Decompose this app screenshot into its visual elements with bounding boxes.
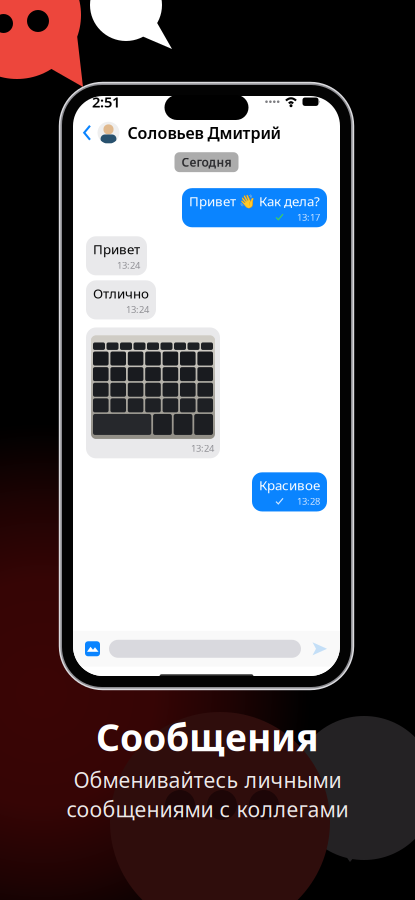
button[interactable]: Соловьев Дмитрий (97, 118, 280, 148)
staticText: 13:28 (297, 495, 320, 507)
button[interactable]: Отлично (86, 280, 156, 319)
button[interactable]: Привет 👋 Как дела? (182, 188, 327, 227)
button[interactable]: Attach photo (85, 641, 109, 656)
button[interactable]: Send (301, 642, 328, 656)
staticText: Красивое (259, 476, 320, 494)
staticText: 2:51 (92, 92, 120, 111)
staticText: сообщениями с коллегами (66, 795, 348, 823)
staticText: Сообщения (96, 712, 319, 762)
staticText: Привет (93, 240, 140, 258)
staticText: Соловьев Дмитрий (127, 122, 280, 143)
staticText: 13:24 (126, 303, 149, 315)
button[interactable]: Красивое (252, 472, 327, 511)
button[interactable]: Back (77, 119, 97, 147)
staticText: 13:17 (297, 211, 320, 223)
button[interactable]: 13:24 (86, 327, 220, 458)
staticText: Обменивайтесь личными (73, 766, 341, 794)
staticText: 13:24 (117, 259, 140, 271)
staticText: Сегодня (181, 154, 231, 170)
staticText: Отлично (93, 284, 149, 302)
button[interactable]: Привет (86, 236, 147, 275)
staticText: Привет 👋 Как дела? (189, 192, 320, 210)
staticText: 13:24 (191, 442, 214, 454)
